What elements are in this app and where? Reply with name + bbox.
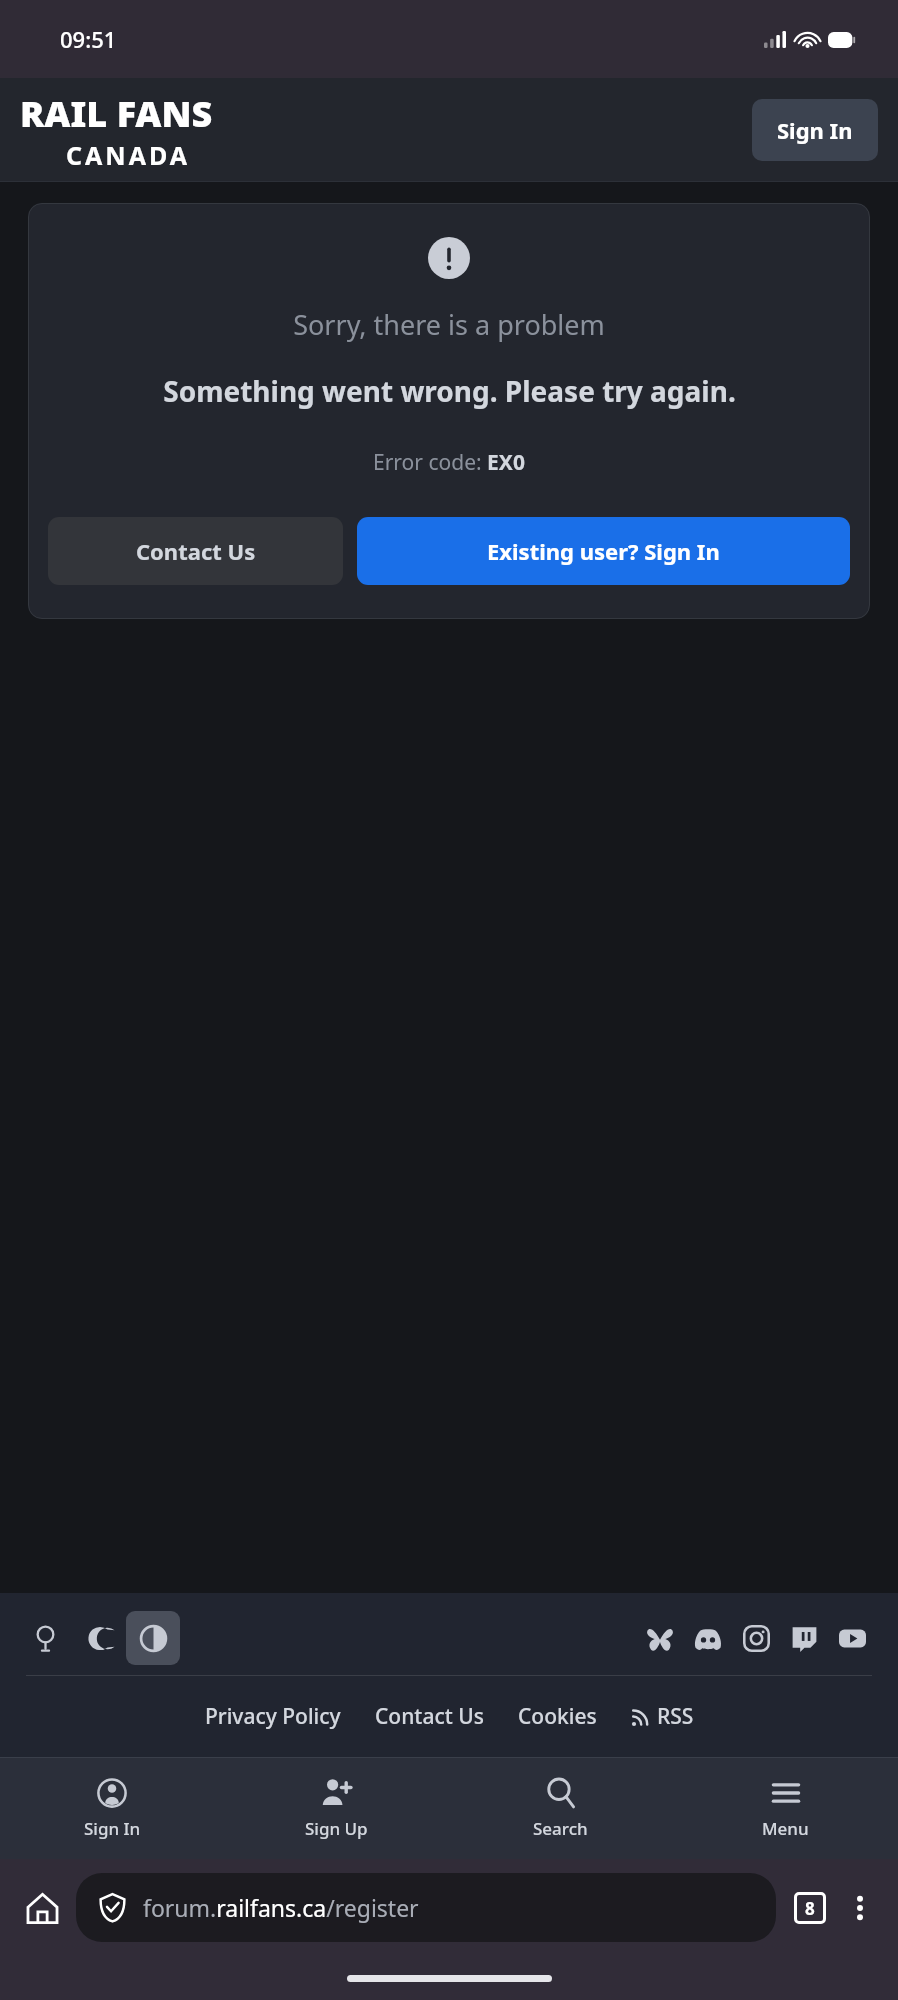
button[interactable]: Contact Us (369, 1698, 490, 1735)
button[interactable]: Dark theme (72, 1611, 126, 1665)
staticText: 8 (805, 1897, 815, 1920)
staticText: CANADA (66, 138, 191, 172)
staticText: Existing user? Sign In (487, 536, 720, 566)
staticText: Contact Us (375, 1702, 484, 1731)
staticText: forum.railfans.ca/register (143, 1892, 419, 1923)
staticText: 09:51 (60, 24, 117, 54)
button[interactable]: Sign Up (224, 1773, 448, 1843)
staticText: Sign In (777, 115, 853, 145)
staticText: Something went wrong. Please try again. (163, 372, 736, 410)
button[interactable]: YouTube (828, 1614, 876, 1662)
button[interactable]: Existing user? Sign In (357, 517, 850, 585)
button[interactable]: RSS (625, 1698, 700, 1735)
button[interactable]: Sign In (0, 1773, 224, 1843)
staticText: RSS (657, 1702, 694, 1731)
button[interactable]: Cookies (512, 1698, 603, 1735)
button[interactable]: Bluesky (636, 1614, 684, 1662)
button[interactable]: Auto theme (126, 1611, 180, 1665)
staticText: Menu (762, 1817, 809, 1840)
button[interactable]: Search (448, 1773, 673, 1843)
staticText: Sign Up (305, 1817, 368, 1840)
button[interactable]: Sign In (752, 99, 878, 161)
button[interactable]: Menu (673, 1773, 898, 1843)
staticText: Search (533, 1817, 588, 1840)
button[interactable]: Light theme (18, 1611, 72, 1665)
button[interactable]: Privacy Policy (199, 1698, 347, 1735)
button[interactable]: forum.railfans.ca/register (76, 1873, 776, 1942)
staticText: Sorry, there is a problem (293, 306, 605, 343)
button[interactable]: Twitch (780, 1614, 828, 1662)
staticText: RAIL FANS (20, 89, 213, 138)
button[interactable]: Contact Us (48, 517, 343, 585)
staticText: Contact Us (136, 536, 256, 566)
staticText: Cookies (518, 1702, 597, 1731)
staticText: Privacy Policy (205, 1702, 341, 1731)
button[interactable]: Home (14, 1880, 70, 1936)
staticText: Sign In (84, 1817, 141, 1840)
button[interactable]: Instagram (732, 1614, 780, 1662)
button[interactable]: Tabs, 8 open (784, 1882, 836, 1934)
button[interactable]: Discord (684, 1614, 732, 1662)
button[interactable]: More options (836, 1884, 884, 1932)
staticText: Error code: EX0 (373, 448, 525, 477)
